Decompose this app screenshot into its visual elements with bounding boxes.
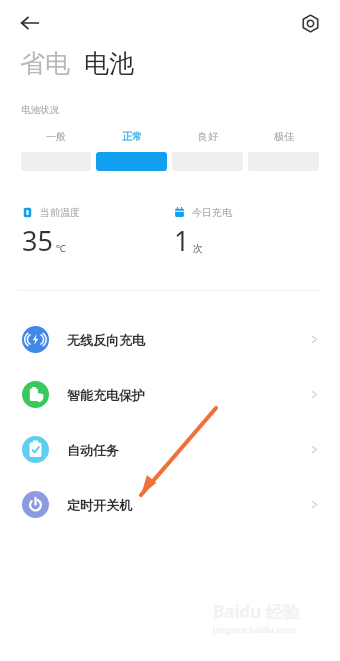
button[interactable]: 无线反向充电 [0, 312, 340, 367]
staticText: 智能充电保护 [67, 387, 145, 403]
staticText: Baidu 经验 [213, 600, 300, 623]
staticText: 一般 [46, 130, 66, 143]
staticText: 省电 [20, 48, 70, 79]
staticText: 1 [174, 222, 190, 259]
button[interactable]: 定时开关机 [0, 477, 340, 532]
staticText: 良好 [198, 130, 218, 143]
staticText: ℃ [56, 241, 66, 255]
button[interactable]: 自动任务 [0, 422, 340, 477]
button[interactable]: 电池 [84, 48, 134, 79]
staticText: 次 [193, 242, 203, 255]
staticText: 定时开关机 [67, 497, 132, 513]
staticText: 正常 [122, 130, 142, 143]
button[interactable]: Back [12, 5, 48, 41]
staticText: 自动任务 [67, 442, 119, 458]
button[interactable]: Settings [292, 5, 328, 41]
staticText: 35 [22, 222, 53, 259]
staticText: 电池 [84, 48, 134, 79]
button[interactable]: 智能充电保护 [0, 367, 340, 422]
staticText: 无线反向充电 [67, 332, 145, 348]
staticText: jingyan.baidu.com [213, 623, 296, 635]
staticText: 当前温度 [40, 206, 80, 219]
staticText: 今日充电 [192, 206, 232, 219]
staticText: 电池状况 [21, 104, 59, 116]
staticText: 极佳 [274, 130, 294, 143]
button[interactable]: 省电 [20, 48, 70, 79]
